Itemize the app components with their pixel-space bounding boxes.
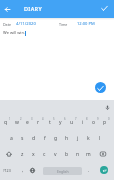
staticText: v: [54, 151, 57, 158]
button[interactable]: Date: [3, 21, 36, 27]
button[interactable]: l: [94, 130, 105, 146]
staticText: 2: [20, 117, 22, 121]
button[interactable]: Save: [99, 2, 110, 13]
staticText: y: [59, 119, 62, 126]
staticText: b: [65, 151, 69, 158]
staticText: 9: [97, 117, 99, 121]
staticText: 8: [86, 117, 88, 121]
button[interactable]: Change language: [28, 162, 37, 178]
staticText: 3: [31, 117, 33, 121]
button[interactable]: Voice input: [103, 103, 112, 112]
button[interactable]: v: [50, 146, 61, 162]
staticText: u: [70, 119, 74, 126]
button[interactable]: k: [83, 130, 94, 146]
staticText: r: [37, 119, 40, 126]
staticText: 0: [108, 117, 110, 121]
staticText: d: [32, 135, 36, 142]
staticText: e: [26, 119, 29, 126]
staticText: 7: [75, 117, 77, 121]
button[interactable]: .: [84, 162, 93, 178]
button[interactable]: c: [39, 146, 50, 162]
staticText: We will win.: [3, 30, 25, 35]
staticText: h: [65, 135, 69, 142]
staticText: c: [43, 151, 46, 158]
staticText: 4/11/2020: [16, 21, 36, 27]
button[interactable]: n: [72, 146, 83, 162]
button[interactable]: s: [17, 130, 28, 146]
staticText: 6: [64, 117, 66, 121]
staticText: 12:00 PM: [77, 21, 95, 27]
button[interactable]: j: [72, 130, 83, 146]
staticText: 4: [42, 117, 44, 121]
button[interactable]: We will win.: [3, 30, 26, 35]
staticText: o: [92, 119, 96, 126]
staticText: n: [76, 151, 80, 158]
button[interactable]: t: [44, 114, 55, 130]
button[interactable]: r: [33, 114, 44, 130]
staticText: a: [10, 135, 13, 142]
staticText: 1: [9, 117, 11, 121]
staticText: g: [54, 135, 58, 142]
button[interactable]: p: [99, 114, 110, 130]
button[interactable]: x: [28, 146, 39, 162]
staticText: Date: [3, 22, 11, 27]
button[interactable]: English: [43, 167, 82, 175]
button[interactable]: a: [6, 130, 17, 146]
staticText: q: [4, 119, 8, 126]
button[interactable]: q: [0, 114, 11, 130]
button[interactable]: m: [83, 146, 94, 162]
staticText: z: [21, 151, 24, 158]
staticText: English: [57, 169, 69, 174]
staticText: DIARY: [24, 5, 43, 12]
staticText: m: [86, 151, 91, 158]
staticText: Time: [59, 22, 68, 27]
staticText: .: [88, 167, 90, 173]
staticText: f: [44, 135, 46, 142]
staticText: i: [82, 119, 84, 126]
button[interactable]: d: [28, 130, 39, 146]
staticText: ,: [22, 167, 24, 173]
button[interactable]: o: [88, 114, 99, 130]
button[interactable]: b: [61, 146, 72, 162]
button[interactable]: y: [55, 114, 66, 130]
staticText: p: [103, 119, 107, 126]
button[interactable]: Time: [59, 21, 95, 27]
staticText: ?123: [3, 168, 11, 173]
button[interactable]: w: [11, 114, 22, 130]
button[interactable]: e: [22, 114, 33, 130]
button[interactable]: Enter: [100, 166, 108, 174]
button[interactable]: Shift: [0, 146, 17, 162]
staticText: 5: [53, 117, 55, 121]
button[interactable]: Save entry: [95, 82, 106, 93]
button[interactable]: Backspace: [94, 146, 111, 162]
button[interactable]: ?123: [0, 162, 15, 178]
button[interactable]: h: [61, 130, 72, 146]
staticText: s: [21, 135, 24, 142]
button[interactable]: u: [66, 114, 77, 130]
staticText: k: [87, 135, 90, 142]
button[interactable]: z: [17, 146, 28, 162]
staticText: l: [99, 135, 101, 142]
staticText: t: [49, 119, 51, 126]
button[interactable]: ,: [18, 162, 28, 178]
button[interactable]: Back: [2, 4, 13, 15]
staticText: x: [32, 151, 35, 158]
staticText: w: [15, 119, 19, 126]
staticText: j: [77, 135, 79, 142]
button[interactable]: i: [77, 114, 88, 130]
button[interactable]: g: [50, 130, 61, 146]
button[interactable]: f: [39, 130, 50, 146]
